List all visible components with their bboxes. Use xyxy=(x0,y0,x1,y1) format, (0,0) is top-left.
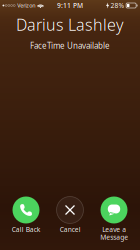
staticText: Cancel xyxy=(59,225,80,234)
staticText: 9:11 PM xyxy=(57,1,83,10)
staticText: FaceTime Unavailable xyxy=(30,40,110,51)
staticText: 28% xyxy=(111,1,125,10)
staticText: Verizon xyxy=(17,2,35,9)
button[interactable]: Call Back xyxy=(4,196,48,241)
button[interactable]: Cancel xyxy=(48,196,92,241)
button[interactable]: Leave a Message xyxy=(92,196,136,241)
staticText: Leave a Message xyxy=(100,225,128,242)
staticText: Darius Lashley xyxy=(16,14,124,35)
staticText: Call Back xyxy=(11,225,40,234)
